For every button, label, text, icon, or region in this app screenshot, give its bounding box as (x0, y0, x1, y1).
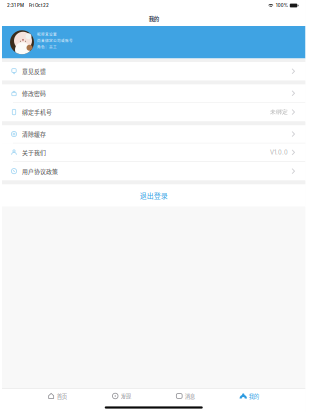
button[interactable]: 发现 (89, 389, 153, 403)
staticText: 消息 (185, 392, 195, 400)
button[interactable]: 关于我们 (2, 144, 305, 162)
button[interactable]: 绑定手机号 (2, 103, 305, 121)
button[interactable]: 首页 (25, 389, 89, 403)
staticText: 首页 (57, 392, 67, 400)
button[interactable]: 意见反馈 (2, 62, 305, 80)
staticText: 退出登录 (140, 190, 168, 200)
staticText: 关于我们 (22, 148, 46, 157)
button[interactable]: 昵称未设置 (2, 26, 305, 58)
button[interactable]: 用户协议政策 (2, 162, 305, 180)
staticText: 修改密码 (22, 89, 46, 97)
staticText: 角色：员工 (37, 44, 57, 49)
staticText: 意见反馈 (22, 67, 46, 75)
staticText: 尚未绑定公司或账号 (37, 38, 73, 43)
staticText: 未绑定 (270, 108, 288, 116)
staticText: 用户协议政策 (22, 167, 58, 175)
staticText: V1.0.0 (270, 149, 288, 156)
button[interactable]: 消息 (153, 389, 217, 403)
button[interactable]: 我的 (217, 389, 281, 403)
staticText: 发现 (121, 392, 131, 400)
staticText: 昵称未设置 (37, 32, 57, 37)
staticText: 绑定手机号 (22, 108, 52, 116)
button[interactable]: 修改密码 (2, 84, 305, 103)
button[interactable]: 清除缓存 (2, 125, 305, 144)
button[interactable]: 退出登录 (2, 184, 305, 206)
staticText: 清除缓存 (22, 130, 46, 138)
staticText: 2:31 PM (7, 3, 24, 8)
staticText: 100% (276, 3, 288, 8)
staticText: 我的 (249, 392, 259, 400)
staticText: 我的 (149, 14, 159, 22)
staticText: Fri Oct 22 (29, 3, 49, 8)
